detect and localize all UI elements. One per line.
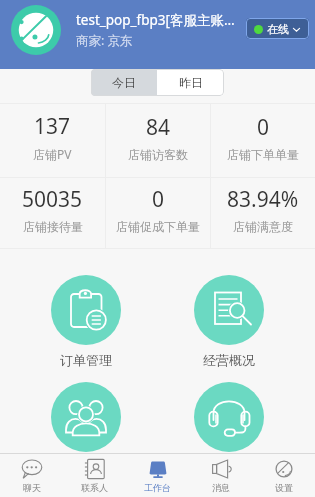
button[interactable]: 84 bbox=[106, 104, 210, 177]
button[interactable]: 设置 bbox=[252, 454, 315, 497]
staticText: 工作台 bbox=[144, 482, 171, 493]
button[interactable]: 83.94% bbox=[211, 178, 315, 248]
button[interactable]: 经营概况 bbox=[194, 275, 264, 368]
staticText: 0 bbox=[152, 185, 165, 214]
staticText: 店铺访客数 bbox=[128, 147, 188, 162]
button[interactable]: 工作台 bbox=[126, 454, 189, 497]
staticText: 83.94% bbox=[227, 185, 299, 214]
staticText: 今日 bbox=[112, 75, 136, 90]
button[interactable]: 聊天 bbox=[0, 454, 63, 497]
button[interactable]: 137 bbox=[0, 104, 105, 177]
staticText: 客户管理 bbox=[60, 459, 112, 475]
button[interactable]: 今日 bbox=[91, 69, 157, 96]
staticText: 经营概况 bbox=[203, 352, 255, 368]
staticText: 137 bbox=[34, 112, 71, 141]
staticText: 店铺促成下单量 bbox=[116, 219, 200, 234]
button[interactable]: 0 bbox=[211, 104, 315, 177]
staticText: 设置 bbox=[275, 482, 293, 493]
staticText: 店铺接待量 bbox=[23, 219, 83, 234]
staticText: 0 bbox=[257, 113, 270, 142]
button[interactable]: 在线 bbox=[246, 18, 309, 39]
staticText: 50035 bbox=[22, 185, 83, 214]
staticText: 店铺满意度 bbox=[233, 219, 293, 234]
staticText: 联系人 bbox=[81, 482, 108, 493]
staticText: 84 bbox=[146, 113, 171, 142]
staticText: 消息 bbox=[212, 482, 230, 493]
button[interactable]: 客户管理 bbox=[51, 382, 121, 475]
button[interactable]: 0 bbox=[106, 178, 210, 248]
button[interactable]: 联系人 bbox=[63, 454, 126, 497]
staticText: 订单管理 bbox=[60, 352, 112, 368]
button[interactable]: 昨日 bbox=[157, 69, 224, 96]
button[interactable]: 订单管理 bbox=[51, 275, 121, 368]
staticText: test_pop_fbp3[客服主账… bbox=[76, 11, 235, 29]
staticText: 在线 bbox=[267, 22, 289, 36]
button[interactable]: 客服服务 bbox=[194, 382, 264, 475]
staticText: 店铺PV bbox=[33, 146, 72, 162]
button[interactable]: Profile avatar bbox=[11, 5, 61, 55]
staticText: 店铺下单单量 bbox=[227, 147, 299, 162]
button[interactable]: 消息 bbox=[189, 454, 252, 497]
staticText: 昨日 bbox=[179, 75, 203, 90]
staticText: 客服服务 bbox=[203, 459, 255, 475]
staticText: 聊天 bbox=[23, 482, 41, 493]
staticText: 商家: 京东 bbox=[76, 32, 133, 49]
button[interactable]: 50035 bbox=[0, 178, 105, 248]
